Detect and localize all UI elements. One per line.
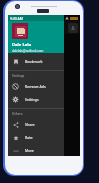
staticText: Others xyxy=(12,112,23,116)
button[interactable]: Account xyxy=(68,23,78,33)
staticText: Settings xyxy=(25,97,39,102)
button[interactable]: Bookmark xyxy=(8,55,64,68)
staticText: Dale Lalu xyxy=(12,42,32,48)
staticText: Remove Ads xyxy=(25,84,46,89)
staticText: Settings xyxy=(12,74,25,78)
button[interactable]: Share xyxy=(8,118,64,131)
button[interactable]: Settings xyxy=(8,93,64,106)
button[interactable]: Search xyxy=(56,23,66,33)
staticText: Bookmark xyxy=(25,59,43,64)
staticText: Rate xyxy=(25,135,33,140)
button[interactable]: Rate xyxy=(8,131,64,144)
button[interactable]: More xyxy=(8,144,64,156)
staticText: More xyxy=(25,148,34,153)
staticText: dalelalu@outlook.com xyxy=(12,49,44,53)
staticText: 9:30 AM xyxy=(10,16,23,21)
button[interactable]: Remove Ads xyxy=(8,80,64,93)
staticText: Share xyxy=(25,122,35,127)
